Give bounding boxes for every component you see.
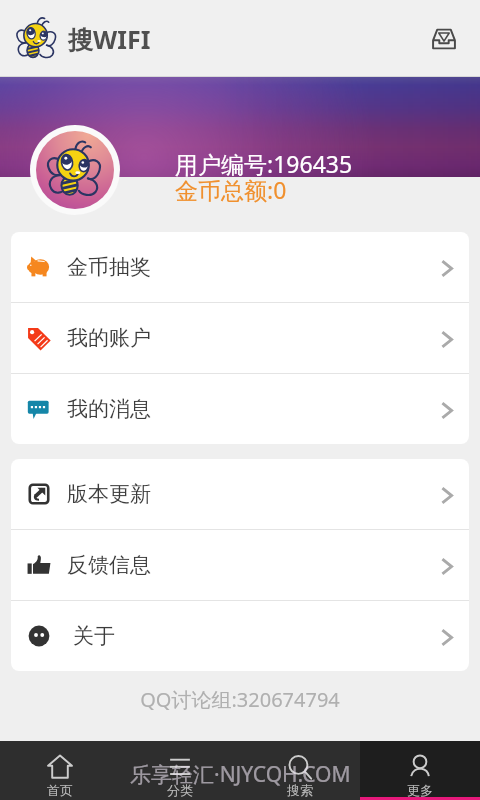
button[interactable]: Inbox xyxy=(422,17,466,61)
staticText: 我的账户 xyxy=(67,325,151,351)
button[interactable]: 反馈信息 xyxy=(11,530,469,600)
staticText: 我的消息 xyxy=(67,396,151,422)
button[interactable]: 我的账户 xyxy=(11,303,469,373)
staticText: 搜WIFI xyxy=(68,22,151,56)
button[interactable]: 首页 xyxy=(0,741,120,800)
button[interactable]: 我的消息 xyxy=(11,374,469,444)
staticText: QQ讨论组:320674794 xyxy=(0,686,480,713)
staticText: 搜索 xyxy=(287,782,313,798)
staticText: 首页 xyxy=(47,782,73,798)
staticText: 用户编号:196435 xyxy=(175,148,353,179)
button[interactable]: 分类 xyxy=(120,741,240,800)
button[interactable]: 更多 xyxy=(360,741,480,800)
button[interactable]: 搜索 xyxy=(240,741,360,800)
button[interactable]: 金币抽奖 xyxy=(11,232,469,302)
button[interactable]: 版本更新 xyxy=(11,459,469,529)
staticText: 反馈信息 xyxy=(67,552,151,578)
button[interactable]: 关于 xyxy=(11,601,469,671)
button[interactable]: Avatar xyxy=(30,125,120,215)
staticText: 版本更新 xyxy=(67,481,151,507)
staticText: 更多 xyxy=(407,782,433,798)
staticText: 乐享轻汇·NJYCQH.COM xyxy=(130,760,351,789)
staticText: 金币抽奖 xyxy=(67,254,151,280)
staticText: 关于 xyxy=(73,623,115,649)
staticText: 分类 xyxy=(167,782,193,798)
staticText: 金币总额:0 xyxy=(175,174,287,205)
